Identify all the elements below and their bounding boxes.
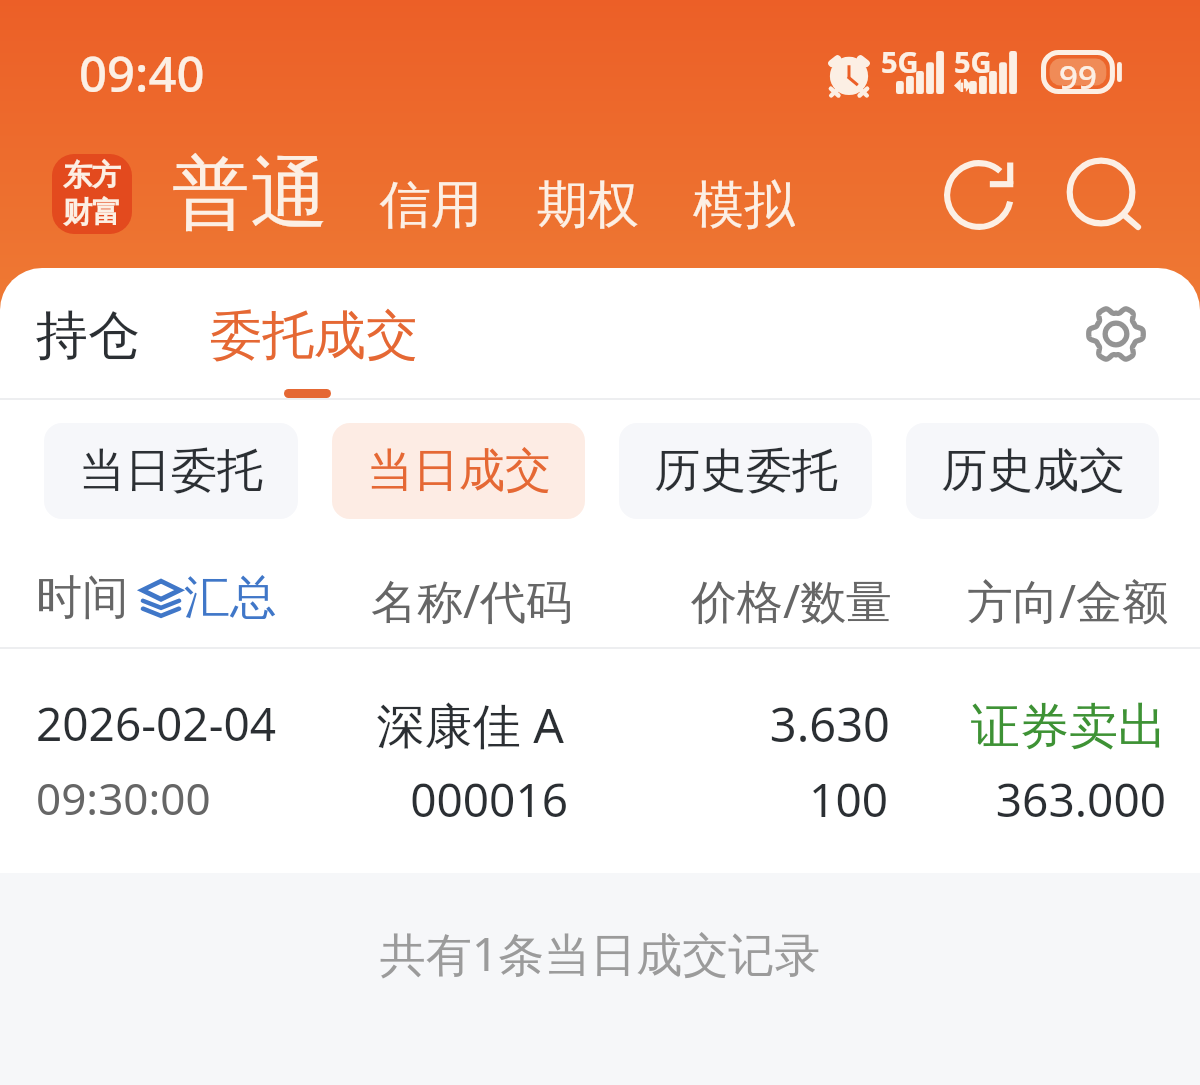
staticText: 方向/金额 xyxy=(0,569,1168,632)
staticText: 100 xyxy=(0,768,888,831)
button[interactable]: 委托成交 xyxy=(210,303,418,369)
button[interactable]: 当日委托 xyxy=(44,423,298,519)
staticText: 历史成交 xyxy=(941,442,1125,500)
button[interactable]: 普通 xyxy=(172,145,328,243)
button[interactable]: 历史委托 xyxy=(619,423,872,519)
button[interactable]: Refresh xyxy=(943,159,1015,231)
staticText: 363.000 xyxy=(0,768,1166,831)
button[interactable]: 当日成交 xyxy=(332,423,585,519)
staticText: 时间 xyxy=(36,569,128,627)
staticText: 5G xyxy=(881,42,919,81)
button[interactable]: 2026-02-04 xyxy=(0,649,1200,873)
staticText: 当日成交 xyxy=(367,442,551,500)
staticText: 共有1条当日成交记录 xyxy=(380,922,821,985)
button[interactable]: Search xyxy=(1066,155,1146,235)
staticText: 东方 xyxy=(63,157,121,194)
staticText: 深康佳 A xyxy=(0,692,564,758)
staticText: 汇总 xyxy=(184,569,276,627)
button[interactable]: 信用 xyxy=(380,173,482,237)
staticText: 财富 xyxy=(63,194,121,231)
button[interactable]: Settings xyxy=(1085,303,1147,365)
staticText: 价格/数量 xyxy=(0,569,892,632)
staticText: 当日委托 xyxy=(79,442,263,500)
button[interactable]: 时间 xyxy=(36,569,276,627)
button[interactable]: 持仓 xyxy=(36,303,140,369)
staticText: 09:40 xyxy=(79,40,205,107)
staticText: 历史委托 xyxy=(654,442,838,500)
staticText: 名称/代码 xyxy=(0,569,572,632)
button[interactable]: 模拟 xyxy=(693,173,795,237)
button[interactable]: 东方 xyxy=(52,154,132,234)
staticText: 2026-02-04 xyxy=(36,692,277,755)
staticText: 3.630 xyxy=(0,692,890,756)
staticText: 99 xyxy=(1059,54,1097,98)
button[interactable]: 历史成交 xyxy=(906,423,1159,519)
button[interactable]: 期权 xyxy=(537,173,639,237)
staticText: 证券卖出 xyxy=(0,696,1167,758)
staticText: 000016 xyxy=(0,768,568,831)
staticText: 09:30:00 xyxy=(36,768,211,828)
staticText: 5G xyxy=(954,42,992,81)
